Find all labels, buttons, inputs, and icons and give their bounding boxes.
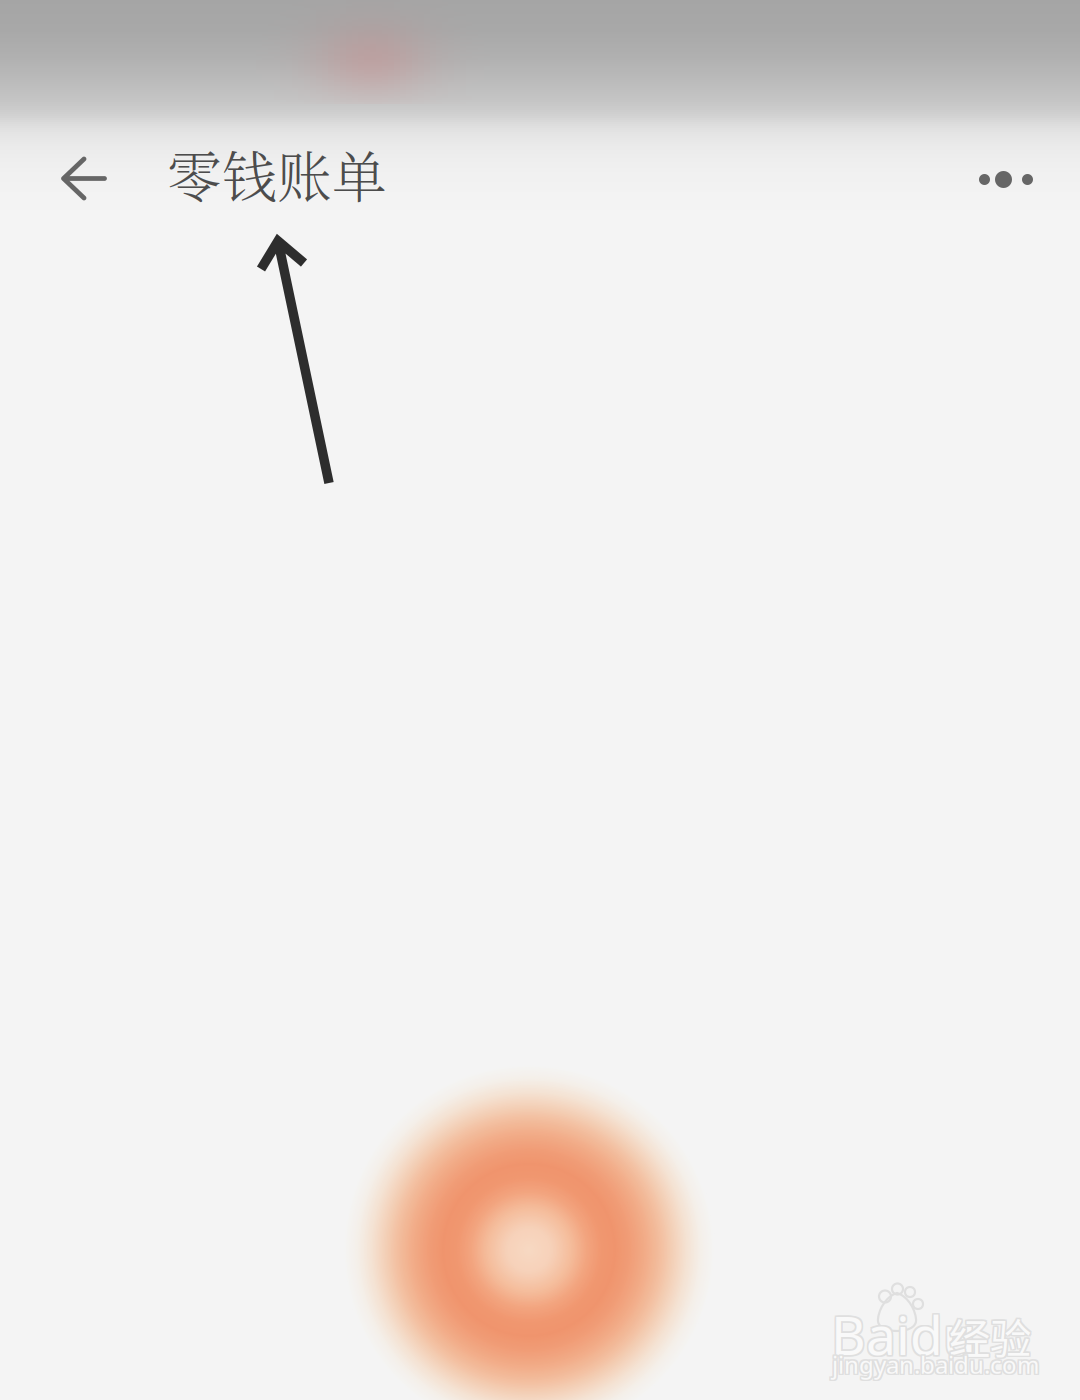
staticText: 经验 — [950, 1305, 1032, 1364]
staticText: Baidu — [831, 1298, 976, 1371]
staticText: jingyan.baidu.com — [832, 1347, 1039, 1379]
staticText: jingyan.baidu.com — [832, 1349, 1039, 1382]
staticText: Baidu — [830, 1298, 975, 1371]
staticText: jingyan.baidu.com — [833, 1349, 1040, 1382]
staticText: jingyan.baidu.com — [832, 1348, 1039, 1381]
staticText: 零钱账单 — [167, 134, 387, 213]
staticText: jingyan.baidu.com — [831, 1349, 1038, 1382]
staticText: jingyan.baidu.com — [831, 1348, 1038, 1381]
button[interactable]: 零钱账单 — [159, 126, 395, 221]
staticText: Baidu — [832, 1299, 977, 1372]
button[interactable]: More options — [959, 150, 1053, 209]
staticText: jingyan.baidu.com — [833, 1348, 1040, 1381]
staticText: Baidu — [832, 1298, 977, 1371]
staticText: Baidu — [830, 1299, 975, 1372]
button[interactable]: Back — [43, 140, 125, 217]
staticText: Baidu — [831, 1299, 976, 1372]
staticText: Baidu — [831, 1297, 976, 1369]
staticText: 经验 — [950, 1307, 1032, 1367]
staticText: 经验 — [948, 1306, 1030, 1366]
staticText: jingyan.baidu.com — [831, 1347, 1038, 1379]
staticText: 经验 — [949, 1306, 1031, 1366]
staticText: 经验 — [948, 1307, 1030, 1367]
staticText: 经验 — [949, 1305, 1031, 1364]
staticText: 经验 — [948, 1305, 1030, 1364]
staticText: Baidu — [832, 1297, 977, 1369]
staticText: jingyan.baidu.com — [833, 1347, 1040, 1379]
staticText: 经验 — [950, 1306, 1032, 1366]
staticText: 经验 — [949, 1307, 1031, 1367]
staticText: Baidu — [830, 1297, 975, 1369]
